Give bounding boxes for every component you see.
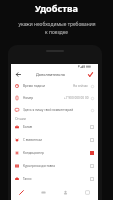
staticText: Дополнительно: [36, 72, 65, 77]
staticText: Багаж: [23, 125, 33, 129]
staticText: Опции: [15, 116, 26, 120]
staticText: +7 900 000 00 00: [64, 96, 89, 100]
staticText: Курьерская доставка: [23, 164, 55, 168]
button[interactable]: Курьерская доставка: [11, 159, 98, 172]
staticText: Здесь я пишу свой комментарий: [23, 108, 74, 112]
staticText: Время подачи: [23, 84, 45, 88]
staticText: Такси: [23, 177, 32, 181]
button[interactable]: Профиль: [76, 185, 98, 200]
button[interactable]: Назад: [15, 71, 22, 78]
button[interactable]: С животным: [11, 133, 98, 146]
button[interactable]: Готово: [87, 71, 94, 78]
button[interactable]: Здесь я пишу свой комментарий: [11, 104, 98, 116]
button[interactable]: Такси: [11, 172, 98, 185]
button[interactable]: Номер: [11, 92, 98, 104]
button[interactable]: Карта: [32, 185, 54, 200]
button[interactable]: Багаж: [11, 120, 98, 133]
staticText: укажи необходимые требования: [18, 21, 96, 28]
button[interactable]: Заказ: [11, 185, 32, 200]
button[interactable]: Время подачи: [11, 80, 98, 92]
staticText: Кондиционер: [23, 151, 44, 155]
staticText: к поездке: [45, 29, 68, 36]
staticText: Номер: [23, 96, 34, 100]
button[interactable]: Кондиционер: [11, 146, 98, 159]
staticText: Удобства: [35, 2, 78, 15]
staticText: С животным: [23, 138, 42, 142]
button[interactable]: История: [54, 185, 76, 200]
staticText: На сейчас: [73, 84, 89, 88]
